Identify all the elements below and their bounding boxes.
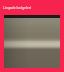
- button[interactable]: Linçade bolgeleri: [3, 0, 61, 15]
- staticText: Linçade bolgeleri: [3, 5, 32, 10]
